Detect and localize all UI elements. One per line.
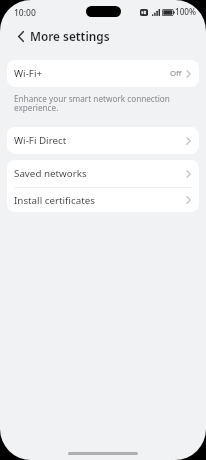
staticText: Enhance your smart network connection ex… [14,93,181,114]
staticText: Saved networks [14,167,87,180]
staticText: 10:00 [14,7,36,19]
staticText: Wi-Fi+ [14,67,43,80]
staticText: Off [170,68,182,79]
button[interactable]: Install certificates [7,188,199,212]
button[interactable]: Back [13,29,28,44]
staticText: Wi-Fi Direct [14,134,67,147]
staticText: Install certificates [14,194,95,207]
button[interactable]: Wi-Fi+ [7,60,199,87]
button[interactable]: Saved networks [7,160,199,187]
staticText: 100% [175,6,197,17]
button[interactable]: Wi-Fi Direct [7,127,199,154]
staticText: More settings [30,28,110,44]
